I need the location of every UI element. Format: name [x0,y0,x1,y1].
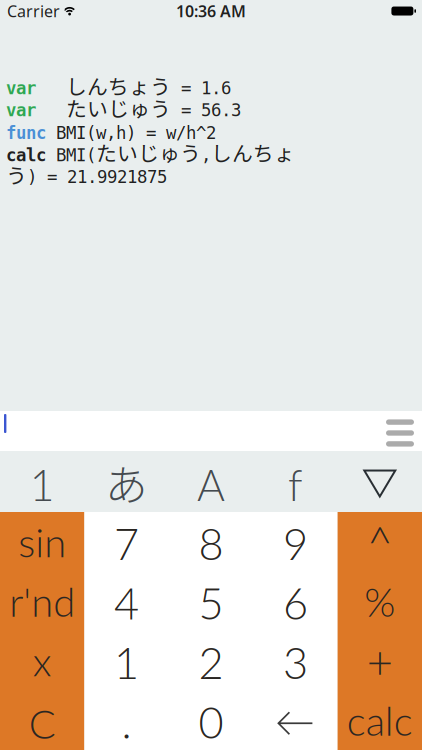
button[interactable]: 7 [84,512,169,571]
button[interactable]: 5 [169,571,253,631]
button[interactable]: 1 [84,631,169,690]
staticText: 7 [114,517,139,569]
staticText: + [367,633,393,688]
staticText: f [288,459,303,510]
button[interactable]: 1 [0,451,84,512]
button[interactable]: Menu [386,415,422,447]
staticText: r'nd [9,577,75,625]
button[interactable]: Hide keyboard [338,451,422,512]
button[interactable]: 2 [169,631,253,690]
staticText: 6 [283,577,308,629]
staticText: func [6,123,46,143]
button[interactable]: % [338,571,422,631]
staticText: x [33,637,52,685]
staticText: sin [18,518,66,566]
staticText: 9 [283,517,308,569]
staticText: 8 [198,517,223,569]
staticText: あ [105,452,148,513]
staticText: BMI(たいじゅう,しんちょ [46,137,295,167]
staticText: % [364,577,395,625]
button[interactable]: 0 [169,690,253,750]
button[interactable]: ^ [338,512,422,571]
button[interactable]: Delete [253,690,338,750]
staticText: C [29,699,56,747]
staticText: 3 [283,636,308,688]
staticText: 1 [30,459,55,510]
staticText: 10:36 AM [176,0,246,22]
staticText: 2 [198,636,223,688]
staticText: calc [347,696,413,744]
staticText: 4 [114,577,139,629]
staticText: calc [6,145,46,165]
staticText: 0 [198,696,223,748]
button[interactable]: 9 [253,512,338,571]
button[interactable]: + [338,631,422,690]
button[interactable]: 3 [253,631,338,690]
staticText: う) = 21.9921875 [6,160,167,189]
staticText: しんちょう = 1.6 [46,71,231,100]
button[interactable]: 8 [169,512,253,571]
button[interactable]: x [0,631,84,690]
staticText: ^ [367,514,393,569]
staticText: 1 [114,636,139,688]
button[interactable]: r'nd [0,571,84,631]
button[interactable]: 6 [253,571,338,631]
staticText: . [122,696,132,748]
staticText: Carrier [7,0,60,22]
button[interactable]: . [84,690,169,750]
staticText: BMI(w,h) = w/h^2 [46,115,237,145]
button[interactable]: sin [0,512,84,571]
staticText: var [6,78,46,98]
button[interactable]: A [169,451,253,512]
staticText: たいじゅう = 56.3 [46,93,241,122]
button[interactable]: 4 [84,571,169,631]
button[interactable]: C [0,690,84,750]
button[interactable]: あ [84,451,169,512]
staticText: 5 [198,577,223,629]
button[interactable]: f [253,451,338,512]
button[interactable]: calc [338,690,422,750]
staticText: var [6,100,46,120]
staticText: A [197,459,225,510]
